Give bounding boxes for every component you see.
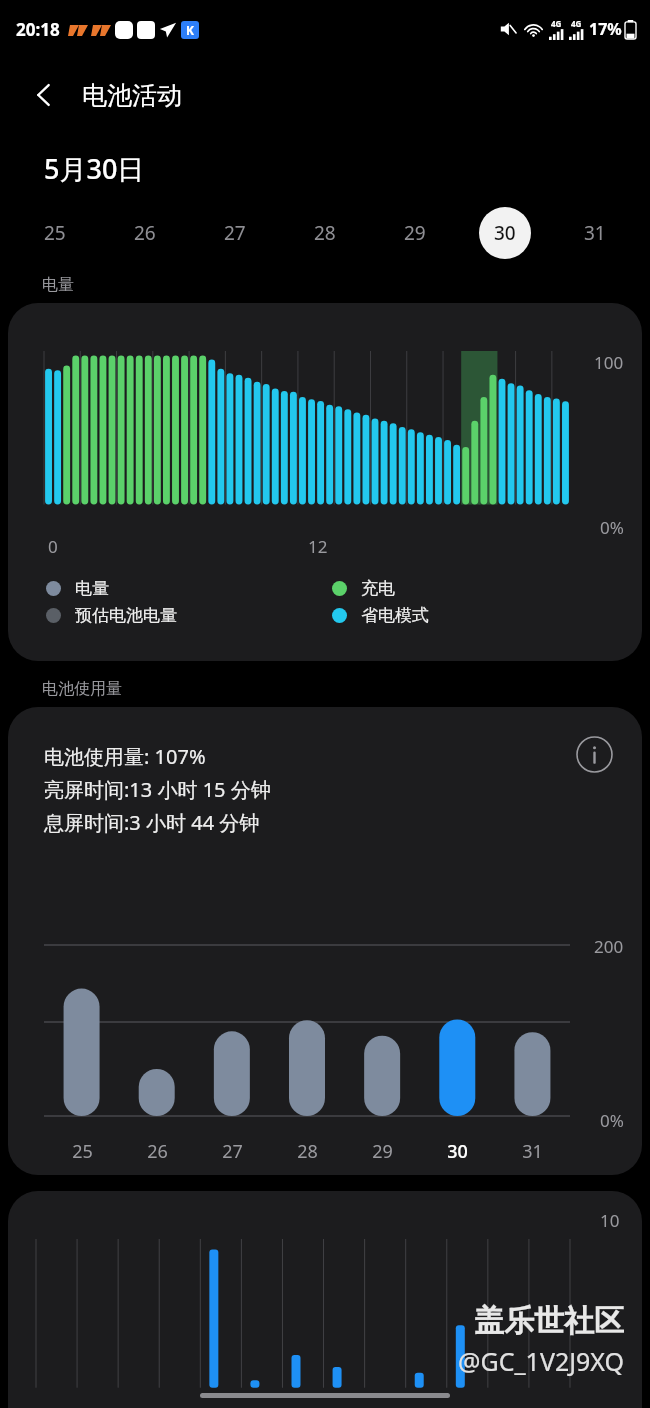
staticText: 充电 <box>361 578 395 599</box>
button[interactable]: 信息 <box>574 734 614 774</box>
staticText: 26 <box>134 220 156 246</box>
staticText: 31 <box>584 220 606 246</box>
button[interactable]: 29 <box>370 205 460 261</box>
staticText: @GC_1V2J9XQ <box>458 1344 624 1378</box>
staticText: 0% <box>600 1109 624 1132</box>
staticText: 电池使用量 <box>42 679 122 699</box>
button[interactable]: 28 <box>280 205 370 261</box>
button[interactable]: 返回 <box>18 69 70 121</box>
staticText: 31 <box>522 1139 543 1164</box>
button[interactable]: 27 <box>190 205 280 261</box>
staticText: 0 <box>48 535 58 558</box>
staticText: 200 <box>594 935 624 958</box>
button[interactable]: 31 <box>550 205 640 261</box>
button[interactable]: 30 <box>460 205 550 261</box>
staticText: 30 <box>494 220 516 246</box>
staticText: 28 <box>314 220 336 246</box>
staticText: 100 <box>594 351 624 374</box>
staticText: 25 <box>44 220 66 246</box>
button[interactable]: 25 <box>10 205 100 261</box>
staticText: 25 <box>72 1139 93 1164</box>
staticText: 预估电池电量 <box>75 605 177 626</box>
staticText: 26 <box>147 1139 168 1164</box>
staticText: 30 <box>447 1139 468 1164</box>
staticText: 电量 <box>75 578 109 599</box>
button[interactable]: 10 <box>8 1191 642 1408</box>
staticText: 29 <box>404 220 426 246</box>
staticText: 电池活动 <box>82 80 182 111</box>
staticText: 10 <box>600 1209 620 1232</box>
staticText: 亮屏时间:13 小时 15 分钟 <box>44 776 271 803</box>
staticText: 29 <box>372 1139 393 1164</box>
staticText: 息屏时间:3 小时 44 分钟 <box>44 809 260 836</box>
button[interactable]: 电池使用量: 107% <box>8 707 642 1175</box>
staticText: K <box>186 22 194 38</box>
staticText: 4G <box>551 18 562 29</box>
staticText: 省电模式 <box>361 605 429 626</box>
staticText: 电量 <box>42 275 74 295</box>
staticText: 28 <box>297 1139 318 1164</box>
staticText: 0% <box>600 516 624 539</box>
button[interactable]: 26 <box>100 205 190 261</box>
staticText: 4G <box>571 18 582 29</box>
staticText: 20:18 <box>16 18 60 41</box>
button[interactable]: 100 <box>8 303 642 661</box>
staticText: 电池使用量: 107% <box>44 743 206 770</box>
staticText: 27 <box>224 220 246 246</box>
staticText: 5月30日 <box>44 150 145 187</box>
staticText: 盖乐世社区 <box>474 1302 624 1340</box>
staticText: 12 <box>308 535 328 558</box>
staticText: 17% <box>589 18 622 40</box>
staticText: 27 <box>222 1139 243 1164</box>
